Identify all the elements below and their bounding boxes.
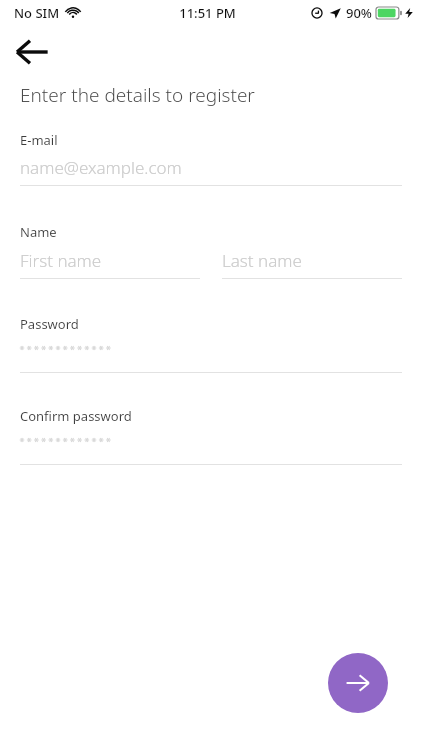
staticText: Last name bbox=[222, 249, 302, 272]
button[interactable] bbox=[20, 336, 220, 360]
button[interactable]: Continue bbox=[328, 653, 388, 713]
staticText: E-mail bbox=[20, 131, 58, 149]
staticText: 11:51 PM bbox=[179, 4, 236, 22]
button[interactable]: name@example.com bbox=[20, 152, 200, 182]
staticText: Confirm password bbox=[20, 407, 132, 425]
button[interactable]: Last name bbox=[222, 245, 402, 275]
staticText: First name bbox=[20, 249, 102, 272]
button[interactable] bbox=[20, 428, 220, 452]
staticText: Name bbox=[20, 223, 57, 241]
button[interactable]: First name bbox=[20, 245, 200, 275]
staticText: Enter the details to register bbox=[20, 82, 255, 108]
staticText: Password bbox=[20, 315, 79, 333]
staticText: name@example.com bbox=[20, 156, 182, 179]
button[interactable]: Back bbox=[6, 26, 58, 78]
staticText: 90% bbox=[346, 4, 372, 22]
staticText: No SIM bbox=[14, 4, 60, 22]
